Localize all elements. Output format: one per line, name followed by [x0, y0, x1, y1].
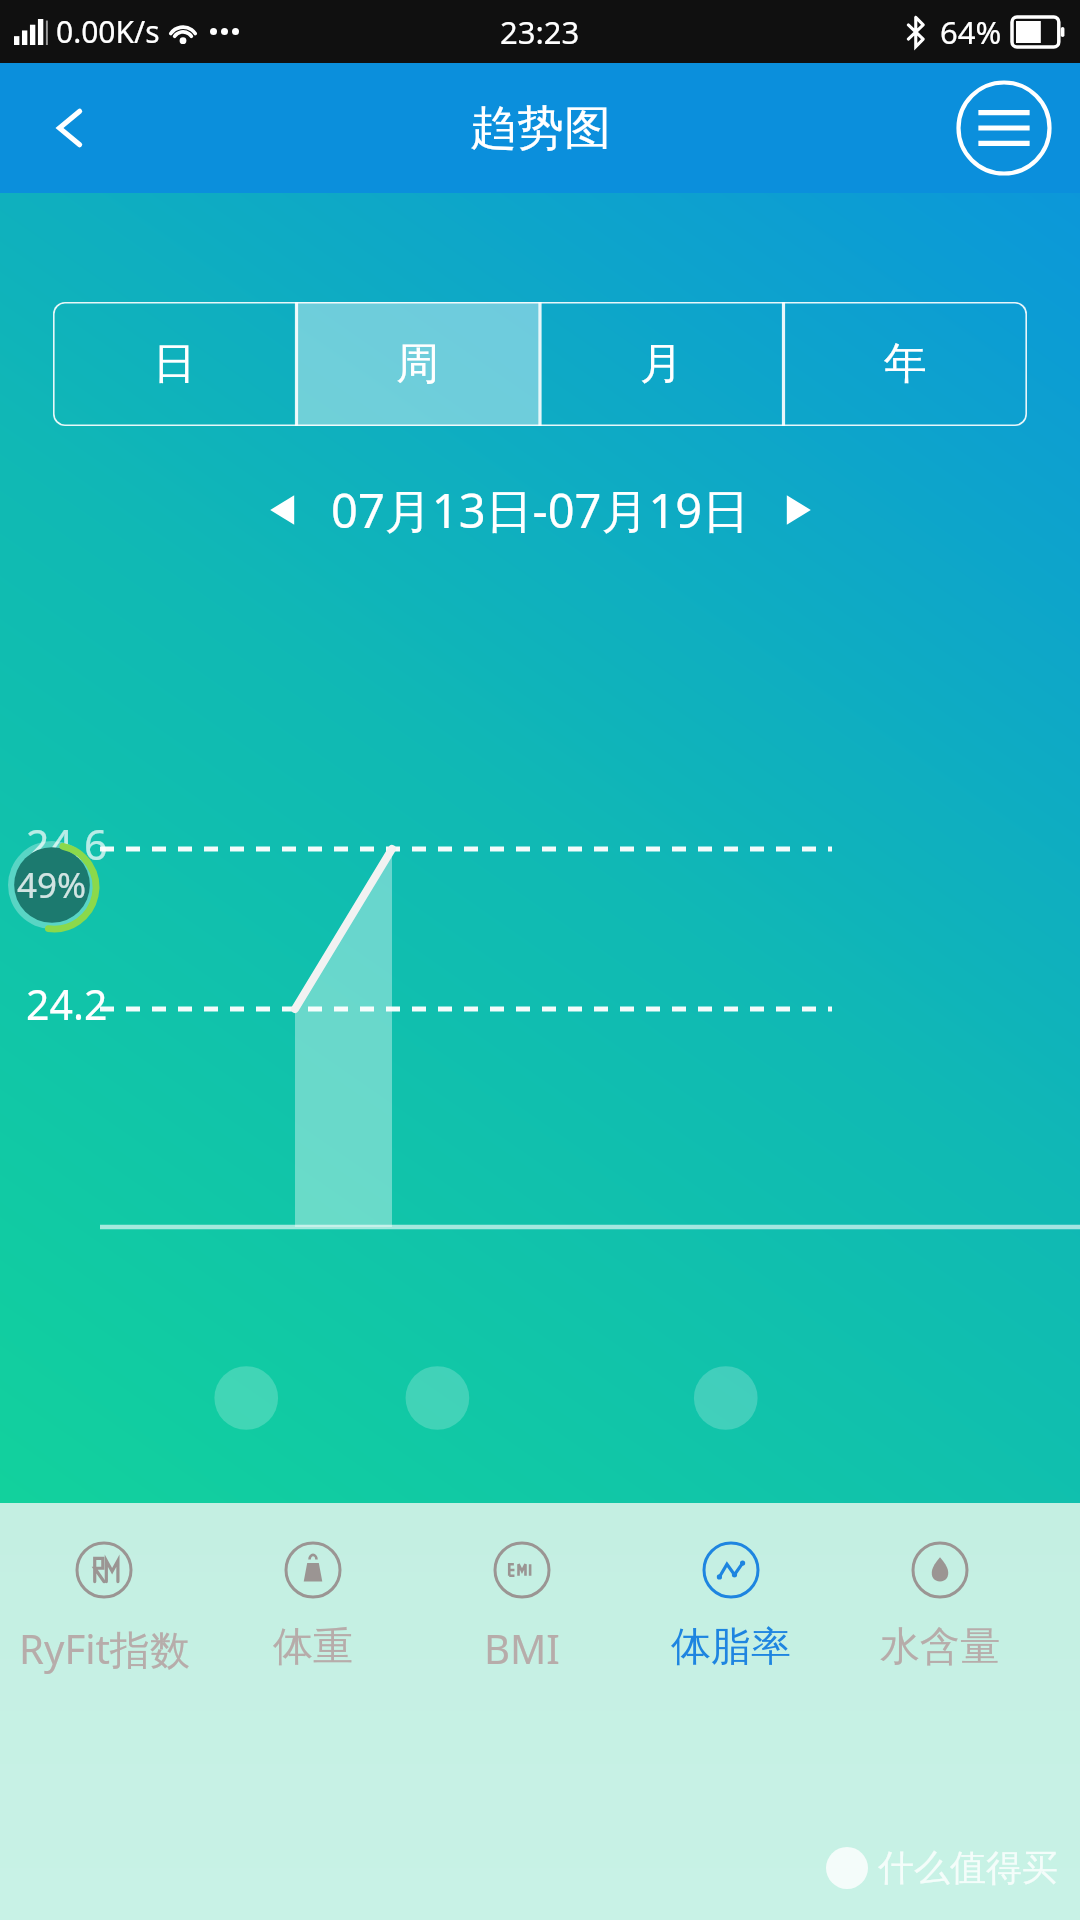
button[interactable]: BMI	[417, 1531, 626, 1685]
staticText: 24.6	[26, 816, 108, 872]
staticText: 日	[153, 337, 196, 391]
staticText: 0.00K/s	[56, 11, 160, 52]
button[interactable]: 周	[296, 302, 539, 426]
button[interactable]: 月	[539, 302, 783, 426]
staticText: 什么值得买	[878, 1845, 1058, 1890]
staticText: 月	[640, 337, 683, 391]
staticText: 64%	[940, 11, 1002, 53]
staticText: 体脂率	[671, 1621, 791, 1671]
staticText: 趋势图	[470, 99, 611, 158]
staticText: 周	[396, 337, 439, 391]
staticText: RyFit指数	[19, 1621, 190, 1676]
staticText: 体重	[273, 1621, 353, 1671]
staticText: 23:23	[500, 11, 580, 53]
button[interactable]: 日	[53, 302, 296, 426]
staticText: 24.2	[26, 976, 108, 1032]
button[interactable]: RyFit指数	[0, 1531, 208, 1686]
button[interactable]: 水含量	[835, 1531, 1044, 1681]
staticText: 49%	[17, 861, 87, 909]
button[interactable]: Menu	[952, 76, 1056, 180]
button[interactable]: Next	[762, 474, 834, 546]
button[interactable]: Back	[22, 80, 118, 176]
staticText: 07月13日-07月19日	[331, 478, 750, 542]
button[interactable]: 体脂率	[626, 1531, 835, 1681]
staticText: 水含量	[880, 1621, 1000, 1671]
button[interactable]: 体重	[208, 1531, 417, 1681]
button[interactable]: Previous	[247, 474, 319, 546]
button[interactable]: 年	[783, 302, 1027, 426]
staticText: BMI	[484, 1621, 560, 1675]
staticText: 年	[884, 337, 927, 391]
